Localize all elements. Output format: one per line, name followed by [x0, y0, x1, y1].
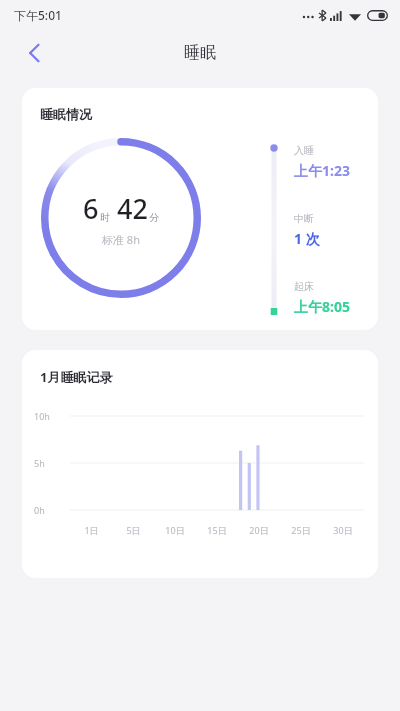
staticText: 30日 — [333, 524, 353, 536]
staticText: 42 — [117, 190, 148, 227]
staticText: 25日 — [291, 524, 311, 536]
staticText: 5h — [34, 457, 45, 469]
staticText: 下午5:01 — [14, 7, 62, 23]
staticText: 分 — [149, 211, 159, 224]
staticText: 5日 — [126, 524, 141, 536]
staticText: 睡眠情况 — [40, 106, 92, 122]
staticText: 1日 — [84, 524, 99, 536]
button[interactable]: 睡眠情况 — [22, 88, 378, 330]
staticText: 20日 — [249, 524, 269, 536]
staticText: 15日 — [207, 524, 227, 536]
staticText: 中断 — [294, 212, 314, 225]
staticText: 1 次 — [294, 229, 320, 248]
button[interactable]: 1月睡眠记录 — [22, 350, 378, 578]
staticText: 上午8:05 — [294, 297, 350, 316]
staticText: 1月睡眠记录 — [40, 368, 113, 386]
staticText: 0h — [34, 504, 45, 516]
staticText: 上午1:23 — [294, 161, 350, 180]
staticText: 起床 — [294, 280, 314, 293]
staticText: 睡眠 — [184, 43, 216, 63]
staticText: 6 — [83, 190, 99, 227]
staticText: 10h — [34, 410, 50, 422]
button[interactable]: 返回 — [16, 35, 52, 71]
staticText: 标准 8h — [102, 232, 140, 247]
staticText: 时 — [100, 211, 110, 224]
staticText: 10日 — [165, 524, 185, 536]
staticText: 入睡 — [294, 144, 314, 157]
